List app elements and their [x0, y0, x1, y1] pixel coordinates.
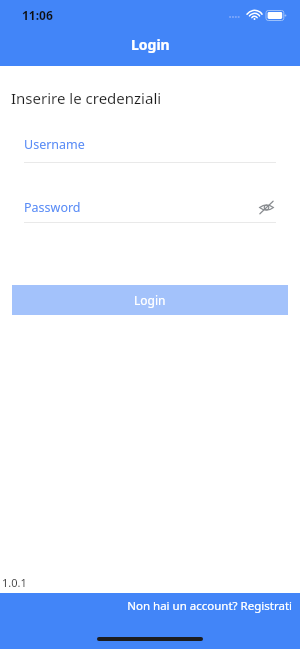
button[interactable]: Show password: [256, 197, 276, 217]
staticText: Username: [24, 136, 85, 153]
button[interactable]: Password: [24, 197, 276, 223]
button[interactable]: Login: [12, 285, 288, 315]
staticText: 11:06: [22, 7, 53, 23]
button[interactable]: Non hai un account? Registrati: [117, 593, 300, 619]
button[interactable]: Username: [24, 136, 276, 163]
staticText: Login: [131, 35, 170, 54]
staticText: Non hai un account? Registrati: [127, 598, 292, 614]
staticText: 1.0.1: [2, 575, 27, 590]
staticText: Login: [134, 292, 166, 308]
staticText: Password: [24, 199, 81, 216]
staticText: Inserire le credenziali: [11, 88, 162, 108]
